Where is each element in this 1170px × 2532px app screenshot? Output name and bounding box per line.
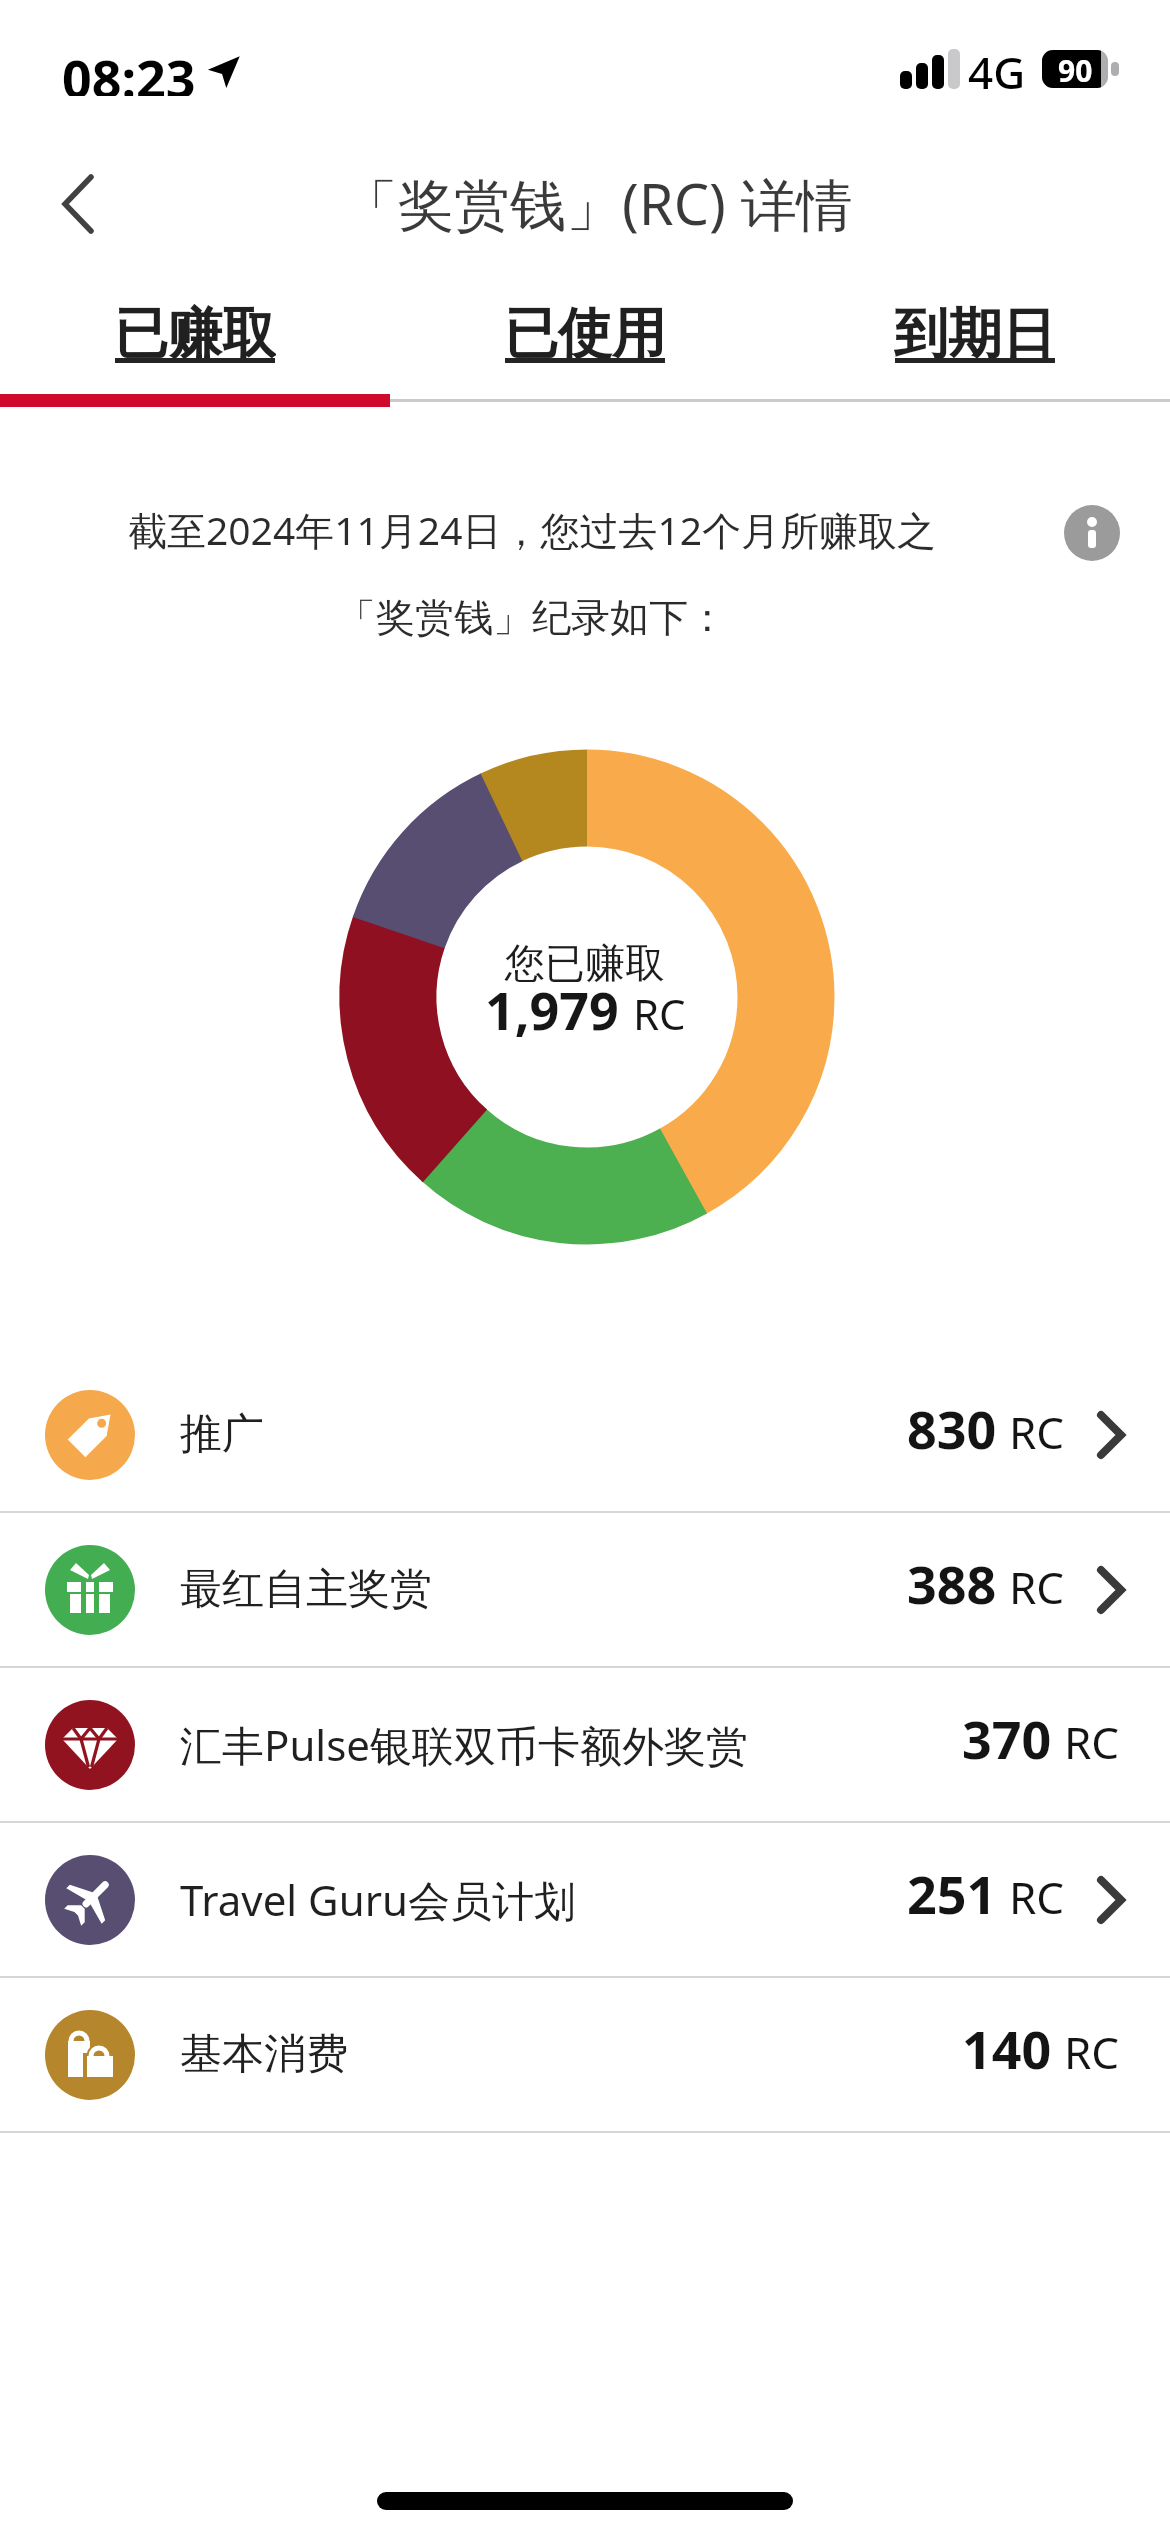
button[interactable]: 已使用 (390, 300, 780, 372)
staticText: 「奖赏钱」纪录如下： (337, 593, 727, 642)
staticText: RC (1009, 1557, 1065, 1617)
staticText: 推广 (180, 1408, 264, 1461)
button[interactable]: 汇丰Pulse银联双币卡额外奖赏 (0, 1668, 1170, 1821)
staticText: 388 (907, 1548, 997, 1619)
staticText: 最红自主奖赏 (180, 1563, 432, 1616)
staticText: 您已赚取 (505, 938, 665, 988)
staticText: 已使用 (504, 300, 666, 358)
staticText: RC (1009, 1867, 1065, 1927)
button[interactable]: 到期日 (780, 300, 1170, 372)
staticText: RC (633, 985, 686, 1042)
button[interactable] (50, 175, 106, 231)
staticText: 90 (1058, 50, 1093, 88)
button[interactable]: 推广 (0, 1358, 1170, 1511)
button[interactable]: 最红自主奖赏 (0, 1513, 1170, 1666)
staticText: 251 (907, 1858, 997, 1929)
staticText: RC (1009, 1402, 1065, 1462)
button[interactable]: Travel Guru会员计划 (0, 1823, 1170, 1976)
button[interactable]: 基本消费 (0, 1978, 1170, 2131)
staticText: 到期日 (894, 300, 1056, 358)
staticText: RC (1064, 1712, 1120, 1772)
staticText: 截至2024年11月24日，您过去12个月所赚取之 (128, 503, 937, 556)
staticText: 08:23 (62, 42, 196, 96)
staticText: 370 (962, 1703, 1052, 1774)
button[interactable]: 已赚取 (0, 300, 390, 372)
staticText: Travel Guru会员计划 (180, 1871, 576, 1928)
staticText: 「奖赏钱」(RC) 详情 (342, 165, 853, 241)
button[interactable] (1064, 505, 1120, 561)
staticText: 已赚取 (114, 300, 276, 358)
staticText: 140 (962, 2013, 1052, 2084)
staticText: 1,979 (485, 974, 619, 1045)
staticText: RC (1064, 2022, 1120, 2082)
staticText: 4G (968, 42, 1026, 96)
staticText: 汇丰Pulse银联双币卡额外奖赏 (180, 1716, 749, 1773)
staticText: 830 (907, 1393, 997, 1464)
staticText: 基本消费 (180, 2028, 348, 2081)
